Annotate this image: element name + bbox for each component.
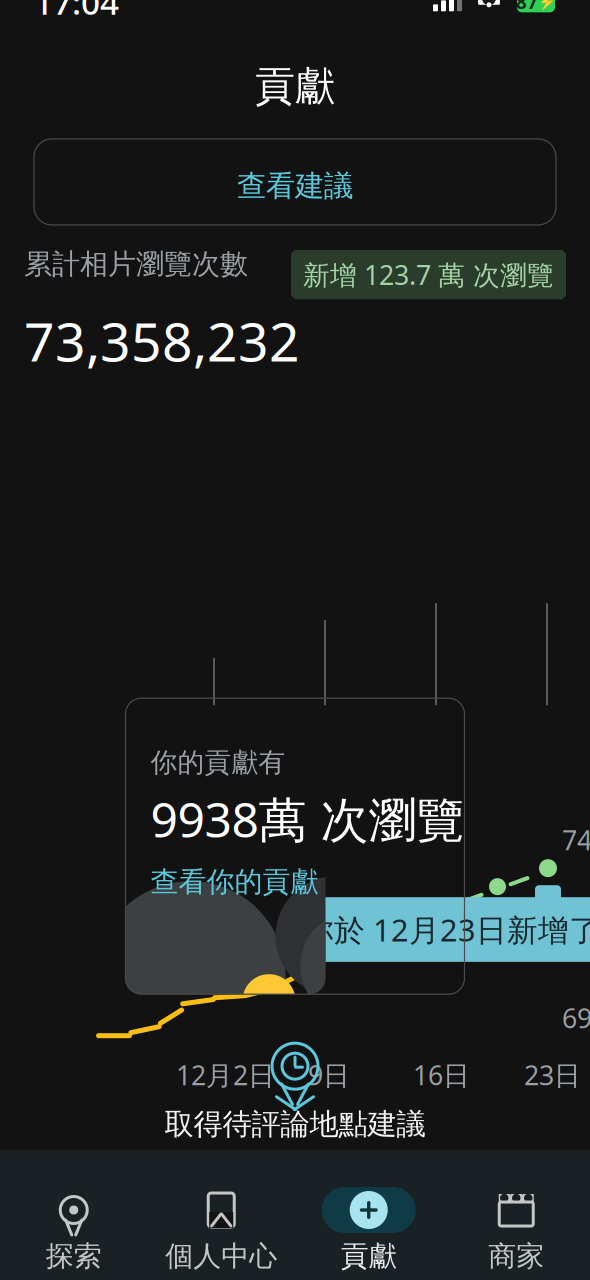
staticText: 查看建議	[237, 168, 353, 204]
staticText: 87	[516, 0, 538, 14]
staticText: 累計相片瀏覽次數	[24, 247, 248, 281]
staticText: 商家	[488, 1239, 544, 1273]
staticText: 7400 萬	[562, 822, 590, 858]
staticText: 73,358,232	[24, 305, 300, 376]
staticText: 17:04	[34, 0, 119, 24]
button[interactable]	[0, 1018, 590, 1142]
staticText: 12月2日	[176, 1057, 275, 1093]
staticText: 取得待評論地點建議	[164, 1106, 425, 1142]
staticText: 貢獻	[341, 1239, 397, 1273]
staticText: 新增 123.7 萬 次瀏覽	[303, 257, 554, 292]
button[interactable]	[295, 1175, 442, 1273]
staticText: 個人中心	[165, 1239, 277, 1273]
staticText: 貢獻	[255, 62, 335, 111]
button[interactable]: 商家	[442, 1175, 590, 1273]
staticText: 你於 12月23日新增了 97 張相片	[303, 909, 590, 950]
button[interactable]: 查看建議	[0, 139, 590, 225]
button[interactable]: 個人中心	[147, 1175, 295, 1273]
staticText: 23日	[524, 1057, 581, 1093]
staticText: ⚡	[538, 0, 556, 10]
staticText: 9938萬 次瀏覽	[150, 787, 464, 851]
staticText: 16日	[413, 1057, 470, 1093]
staticText: 你的貢獻有	[150, 746, 285, 779]
staticText: 6900 萬	[562, 1000, 590, 1036]
button[interactable]: 探索	[0, 1175, 147, 1273]
staticText: 探索	[46, 1239, 102, 1273]
staticText: 9日	[308, 1057, 350, 1093]
staticText: 查看你的貢獻	[150, 865, 318, 899]
button[interactable]: 你的貢獻有	[82, 698, 507, 994]
